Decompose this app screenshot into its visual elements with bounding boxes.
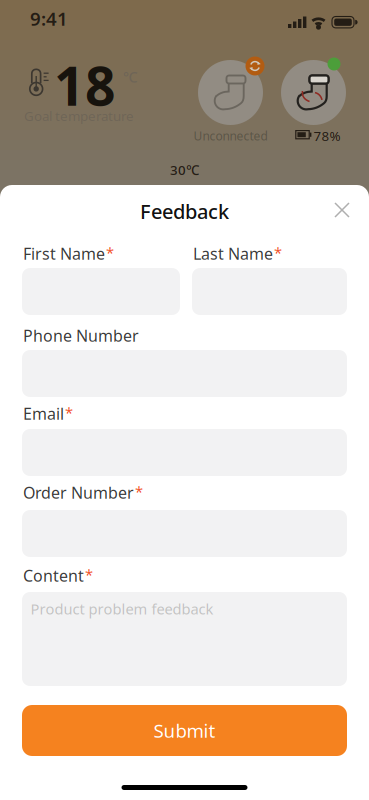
staticText: 30℃ bbox=[170, 161, 199, 179]
staticText: 18 bbox=[54, 50, 116, 120]
button[interactable]: Right sock, connected, 78% bbox=[281, 60, 346, 125]
staticText: * bbox=[106, 243, 114, 262]
staticText: Unconnected bbox=[193, 128, 267, 144]
staticText: Submit bbox=[153, 718, 215, 743]
staticText: 9:41 bbox=[30, 6, 68, 31]
staticText: * bbox=[274, 243, 282, 262]
staticText: First Name bbox=[23, 243, 105, 264]
button[interactable]: Reconnect bbox=[245, 56, 264, 75]
staticText: Goal temperature bbox=[24, 107, 134, 125]
button[interactable]: Submit bbox=[22, 705, 347, 756]
staticText: Phone Number bbox=[23, 325, 139, 346]
staticText: Content bbox=[23, 565, 84, 586]
staticText: Product problem feedback bbox=[30, 599, 213, 618]
staticText: * bbox=[65, 403, 73, 422]
staticText: * bbox=[135, 482, 143, 501]
staticText: * bbox=[85, 565, 93, 584]
staticText: Feedback bbox=[140, 198, 229, 225]
button[interactable]: Close bbox=[327, 195, 357, 225]
staticText: Order Number bbox=[23, 482, 134, 503]
button[interactable]: Content bbox=[22, 592, 347, 686]
button[interactable]: Left sock, unconnected bbox=[198, 60, 263, 125]
staticText: Last Name bbox=[193, 243, 273, 264]
staticText: 78% bbox=[313, 127, 340, 145]
staticText: Email bbox=[23, 403, 64, 424]
staticText: ℃ bbox=[123, 67, 138, 86]
